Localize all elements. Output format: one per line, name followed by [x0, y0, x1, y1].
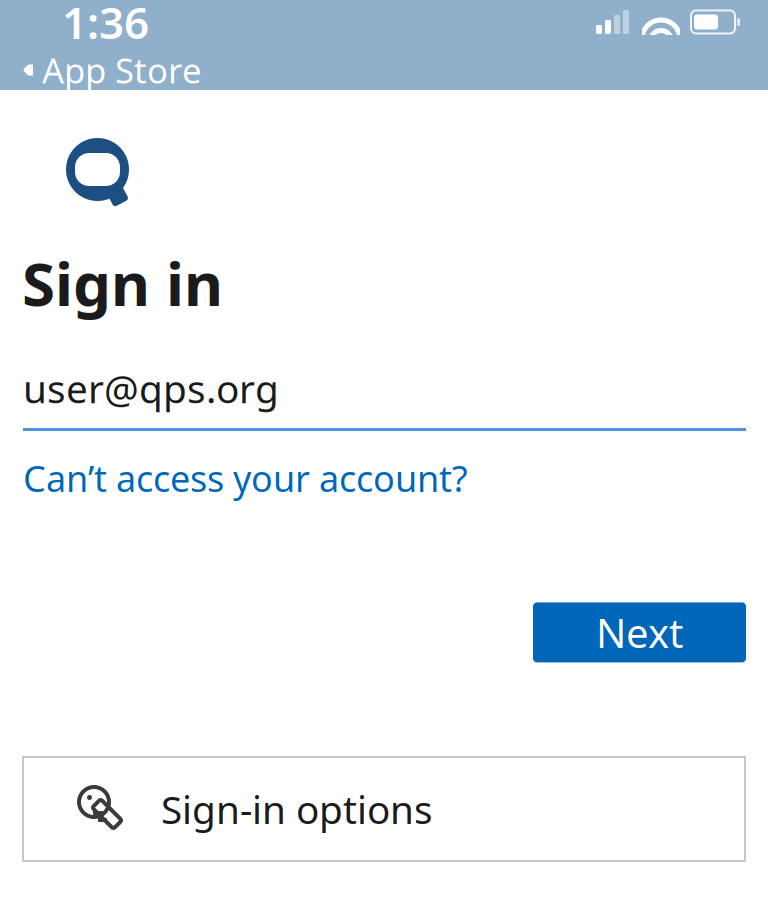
- button[interactable]: Can’t access your account?: [0, 448, 491, 508]
- staticText: Sign in: [22, 243, 223, 323]
- staticText: Can’t access your account?: [23, 454, 468, 502]
- staticText: App Store: [42, 47, 202, 93]
- button[interactable]: Sign-in options: [23, 757, 745, 861]
- staticText: Sign-in options: [161, 783, 433, 835]
- button[interactable]: Next: [533, 602, 746, 662]
- staticText: 1:36: [62, 0, 149, 51]
- staticText: Next: [596, 606, 683, 659]
- staticText: user@qps.org: [23, 363, 279, 414]
